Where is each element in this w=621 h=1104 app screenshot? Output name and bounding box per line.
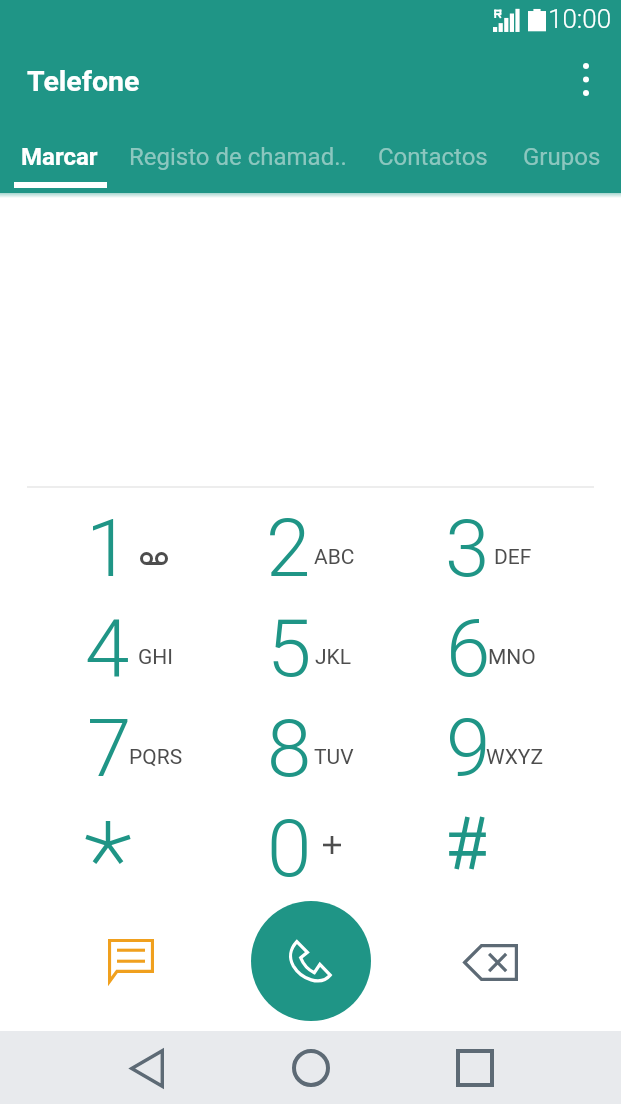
button[interactable]: 0 [220, 797, 402, 897]
button[interactable]: Backspace [402, 894, 584, 1028]
button[interactable]: Grupos [523, 122, 601, 193]
button[interactable]: 7 [37, 697, 220, 797]
staticText: 1 [86, 502, 131, 596]
staticText: 7 [87, 702, 132, 796]
button[interactable]: Call [251, 901, 371, 1021]
button[interactable] [37, 797, 220, 897]
staticText: 10:00 [548, 4, 612, 34]
staticText: PQRS [129, 745, 183, 770]
button[interactable] [402, 797, 584, 897]
staticText: 0 [267, 802, 312, 896]
button[interactable]: Contactos [378, 122, 488, 193]
button[interactable]: 4 [37, 597, 220, 697]
button[interactable]: Registo de chamad.. [129, 122, 347, 193]
button[interactable]: Home [229, 1031, 393, 1104]
staticText: Contactos [378, 143, 488, 171]
button[interactable]: More options [561, 46, 621, 116]
button[interactable]: Recents [393, 1031, 557, 1104]
staticText: Telefone [27, 65, 140, 98]
staticText: Registo de chamad.. [129, 143, 347, 171]
staticText: 4 [85, 602, 130, 696]
staticText: 5 [267, 602, 312, 696]
staticText: DEF [494, 545, 532, 570]
staticText: WXYZ [486, 745, 543, 770]
staticText: TUV [314, 745, 354, 770]
button[interactable]: 1 [37, 497, 220, 597]
staticText: Grupos [523, 143, 601, 171]
button[interactable]: Back [64, 1031, 229, 1104]
button[interactable]: 8 [220, 697, 402, 797]
button[interactable]: 2 [220, 497, 402, 597]
button[interactable]: 5 [220, 597, 402, 697]
staticText: JKL [315, 645, 352, 670]
staticText: Marcar [21, 143, 98, 171]
staticText: 3 [445, 502, 490, 596]
staticText: 8 [267, 702, 312, 796]
staticText: GHI [138, 645, 173, 670]
staticText: MNO [488, 645, 536, 670]
staticText: ABC [314, 545, 355, 570]
button[interactable]: 3 [402, 497, 584, 597]
button[interactable]: Marcar [21, 122, 98, 193]
staticText: 6 [446, 602, 491, 696]
button[interactable]: Message [37, 894, 220, 1028]
button[interactable]: 9 [402, 697, 584, 797]
staticText: 9 [446, 702, 491, 796]
staticText: 2 [266, 502, 311, 596]
button[interactable]: 6 [402, 597, 584, 697]
